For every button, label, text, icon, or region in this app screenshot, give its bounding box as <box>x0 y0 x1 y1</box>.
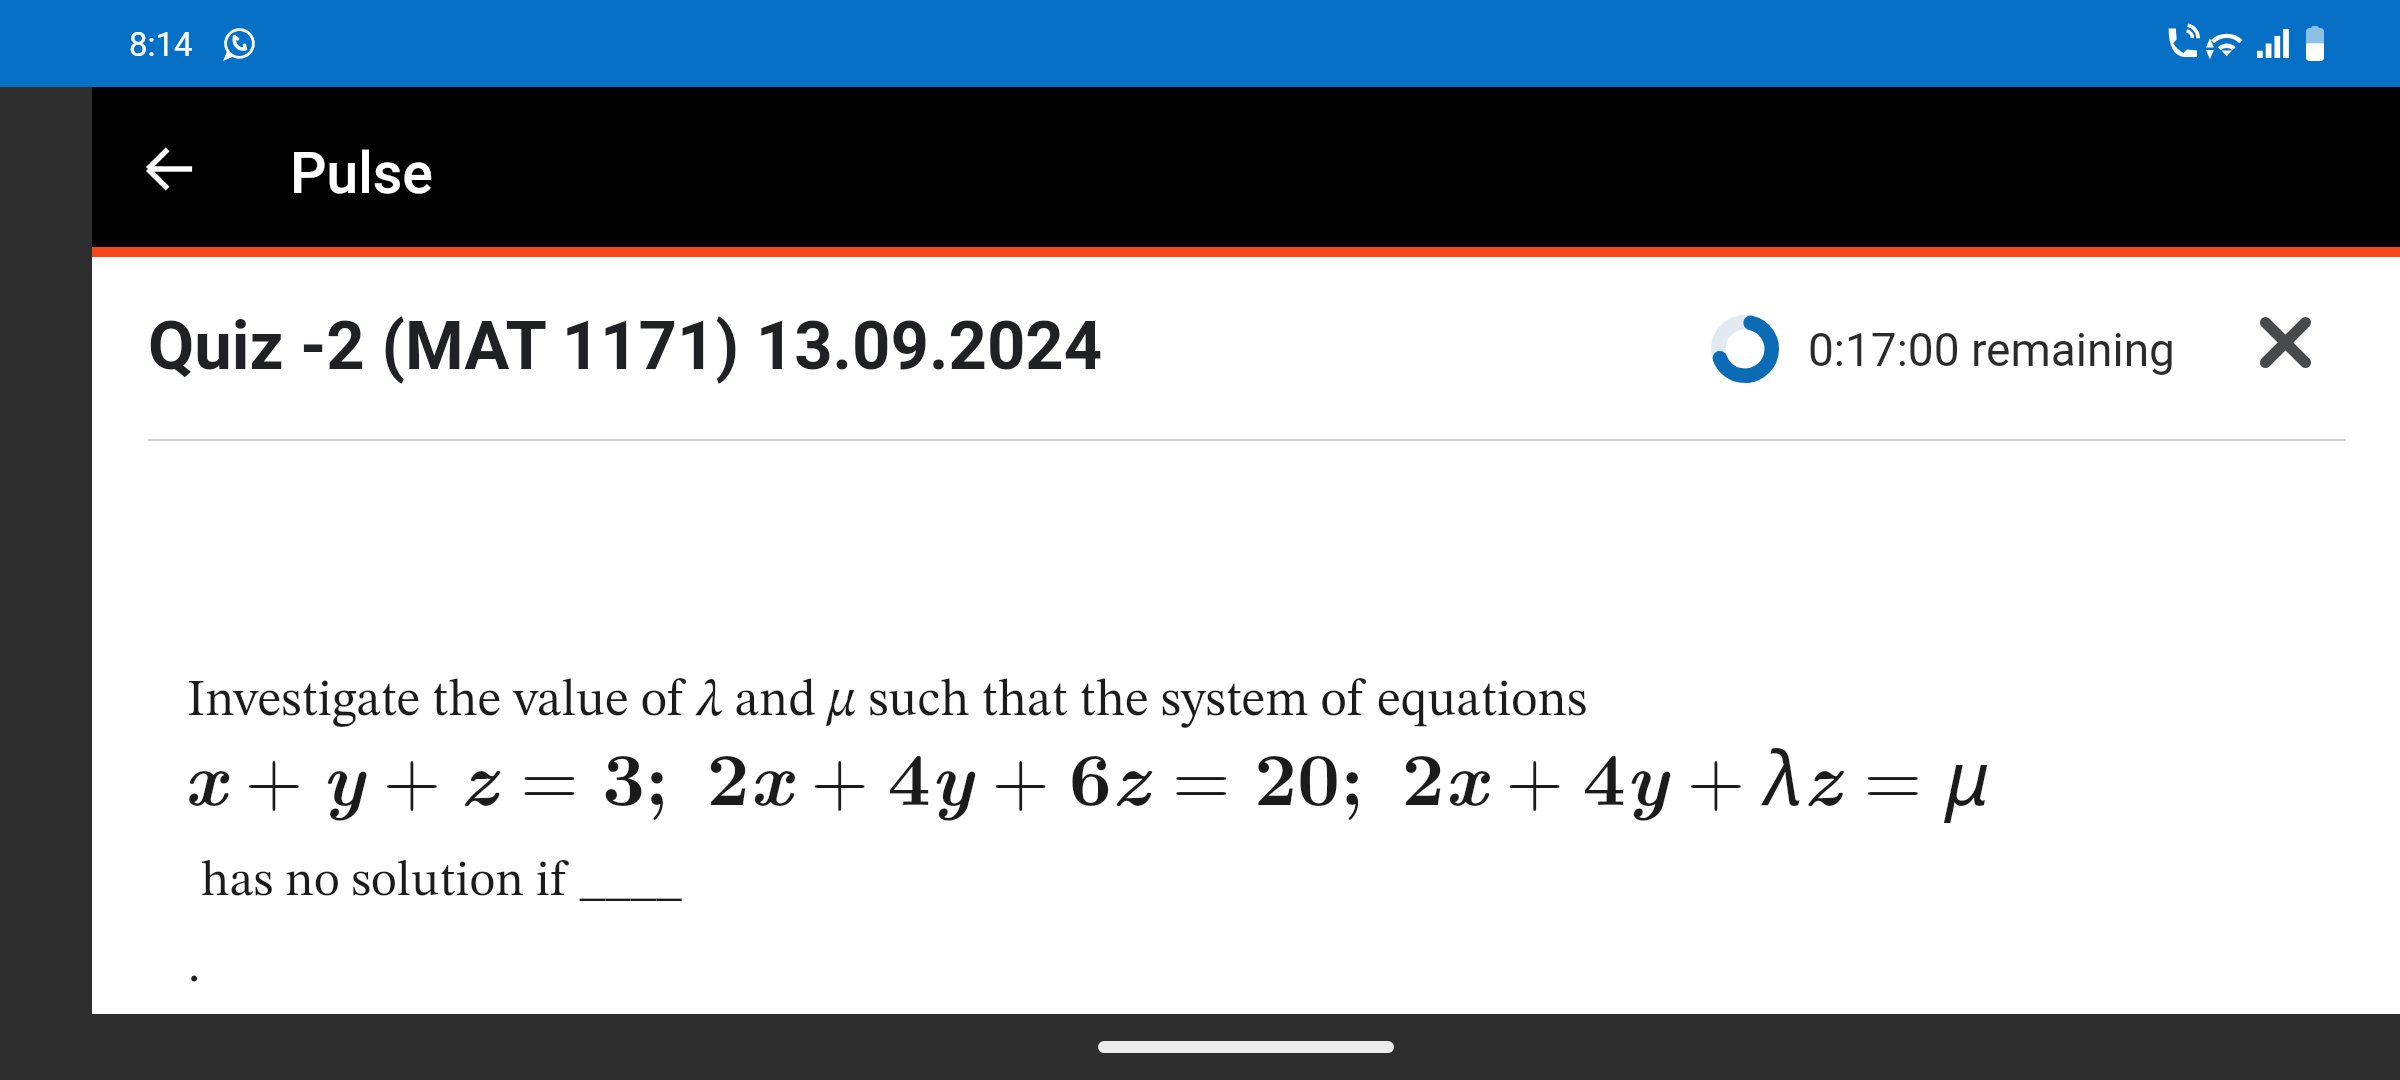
staticText: 0:17:00 remaining <box>1808 323 2175 377</box>
staticText: has no solution if ____ <box>189 857 682 907</box>
staticText: 8:14 <box>129 25 193 64</box>
staticText: Investigate the value of λ and μ such th… <box>187 676 1588 727</box>
button[interactable]: Close quiz <box>2241 298 2329 386</box>
staticText: Quiz -2 (MAT 1171) 13.09.2024 <box>148 307 1103 386</box>
button[interactable]: Back <box>126 125 214 213</box>
staticText: . <box>188 943 201 993</box>
button[interactable]: 0:17:00 remaining <box>1707 301 2273 397</box>
staticText: Pulse <box>290 140 433 207</box>
staticText: x + y + z = 3; 2x + 4y + 6z = 20; 2x + 4… <box>184 719 1990 828</box>
